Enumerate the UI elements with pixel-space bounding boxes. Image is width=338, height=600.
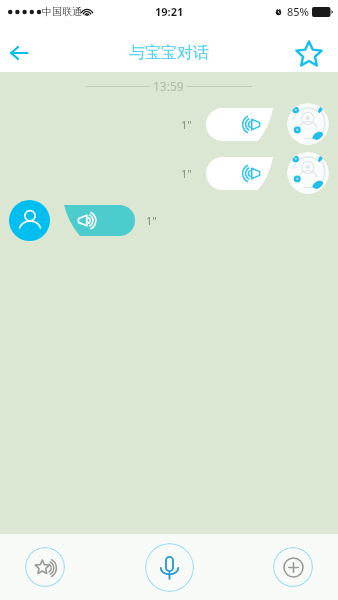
button[interactable]: User avatar [9,200,50,241]
button[interactable]: Robot avatar [287,103,329,145]
button[interactable]: Play voice message [64,205,135,236]
staticText: 中国联通 [42,5,82,18]
staticText: 13:59 [153,78,184,94]
button[interactable]: Add [273,547,313,587]
button[interactable]: Robot avatar [287,152,329,194]
staticText: 19:21 [155,4,184,19]
staticText: 1" [146,213,157,228]
staticText: 85% [287,4,309,19]
button[interactable]: Play voice message [206,108,273,141]
button[interactable]: Favorite [290,34,328,72]
staticText: 1" [181,117,192,132]
button[interactable]: Record voice [145,543,194,592]
button[interactable]: Back [0,34,38,72]
staticText: 与宝宝对话 [129,43,209,63]
button[interactable]: Play voice message [206,157,273,190]
button[interactable]: Sound effects [25,547,65,587]
staticText: 1" [181,166,192,181]
